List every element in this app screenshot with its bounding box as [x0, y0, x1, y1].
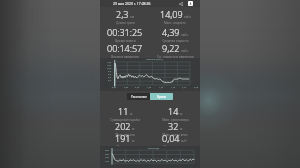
staticText: Средняя скорость — [162, 39, 189, 43]
staticText: 202 — [115, 120, 131, 132]
staticText: км/ч — [184, 15, 191, 19]
staticText: 205 — [105, 149, 109, 152]
staticText: 29 мая 2020 г. 17:28:36 — [113, 1, 151, 6]
staticText: 6,0 — [108, 73, 112, 76]
staticText: 2,10 — [182, 86, 187, 89]
staticText: м — [132, 127, 135, 131]
staticText: 191 — [115, 132, 131, 144]
staticText: Время записи — [115, 39, 136, 43]
staticText: 0,04 — [162, 132, 180, 144]
button[interactable]: Время — [150, 93, 173, 100]
staticText: м — [132, 139, 135, 143]
staticText: Макс. уклон вверх — [162, 118, 189, 122]
staticText: 190 — [105, 160, 109, 163]
staticText: 32 — [168, 120, 179, 132]
button[interactable]: Share — [177, 0, 184, 7]
staticText: 8,0 — [108, 70, 112, 73]
staticText: 11 — [118, 105, 129, 117]
staticText: Мин. высота — [116, 145, 135, 149]
staticText: 9,22 — [162, 42, 180, 54]
staticText: 2,0 — [108, 79, 112, 82]
staticText: 10,0 — [107, 67, 112, 70]
staticText: 12,0 — [107, 64, 112, 67]
staticText: м — [180, 112, 183, 116]
staticText: Макс. уклон вниз — [162, 133, 188, 137]
staticText: Ср. скорость в движении — [157, 55, 194, 59]
staticText: Макс. ускорение — [163, 145, 188, 149]
staticText: 00:31:25 — [107, 26, 143, 38]
staticText: км/ч — [181, 33, 188, 37]
staticText: м — [180, 127, 183, 131]
staticText: 0,35 — [124, 86, 129, 89]
staticText: 00:14:57 — [107, 42, 143, 54]
staticText: Макс. скорость — [164, 21, 186, 25]
button[interactable]: Export — [187, 0, 194, 7]
button[interactable]: Расстояние — [127, 93, 150, 100]
staticText: Расстояние — [131, 95, 147, 99]
staticText: 4,39 — [162, 26, 180, 38]
staticText: 1,75 — [171, 86, 176, 89]
staticText: 2,45 — [194, 86, 199, 89]
staticText: 200 — [105, 153, 109, 156]
staticText: 1,05 — [147, 86, 152, 89]
staticText: Суммарный подъём — [110, 118, 140, 122]
staticText: Длина трека — [116, 21, 135, 25]
staticText: м/с² — [181, 139, 188, 143]
staticText: Высота (м) — [148, 147, 160, 150]
staticText: 14,09 — [160, 8, 183, 20]
staticText: 2,3 — [116, 8, 129, 20]
staticText: км/ч — [181, 49, 188, 53]
staticText: 14,0 — [107, 61, 112, 64]
staticText: Время в движении — [111, 55, 139, 59]
staticText: 4,0 — [108, 76, 112, 79]
staticText: 195 — [105, 156, 109, 159]
staticText: Макс. высота — [115, 133, 135, 137]
staticText: 0,70 — [135, 86, 140, 89]
staticText: Скорость (км/ч) — [146, 58, 163, 61]
staticText: 1,40 — [159, 86, 164, 89]
staticText: 14 — [168, 105, 179, 117]
staticText: 0,00 — [112, 86, 117, 89]
staticText: м — [130, 112, 133, 116]
staticText: Время — [157, 95, 167, 99]
staticText: км — [130, 15, 135, 19]
